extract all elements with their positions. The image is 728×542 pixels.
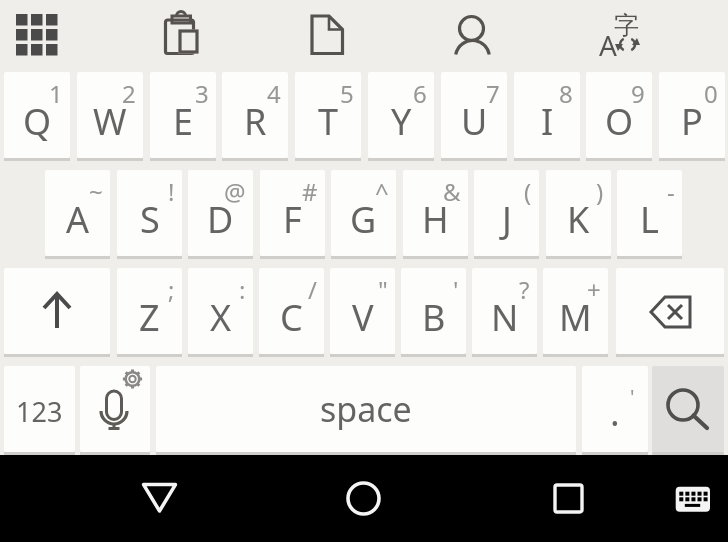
button[interactable] <box>652 366 724 455</box>
button[interactable] <box>4 268 110 357</box>
staticText: 5 <box>340 77 354 110</box>
staticText: 8 <box>559 77 573 110</box>
button[interactable]: S <box>117 170 182 259</box>
button[interactable]: O <box>586 72 652 161</box>
button[interactable]: V <box>330 268 395 357</box>
staticText: : <box>239 273 246 306</box>
staticText: 3 <box>195 77 209 110</box>
button[interactable] <box>152 4 212 64</box>
staticText: G <box>350 195 377 244</box>
staticText: A <box>599 26 617 64</box>
staticText: ! <box>168 175 175 208</box>
staticText: X <box>210 293 232 342</box>
staticText: O <box>605 97 634 146</box>
staticText: ~ <box>89 175 103 208</box>
staticText: ( <box>524 175 532 208</box>
staticText: 123 <box>16 393 63 430</box>
staticText: C <box>280 293 303 342</box>
button[interactable] <box>666 473 716 523</box>
button[interactable]: K <box>546 170 611 259</box>
staticText: ^ <box>375 175 389 208</box>
staticText: ) <box>596 175 604 208</box>
button[interactable]: F <box>260 170 325 259</box>
staticText: 2 <box>122 77 136 110</box>
staticText: / <box>308 273 317 306</box>
button[interactable]: R <box>222 72 288 161</box>
button[interactable]: C <box>259 268 324 357</box>
staticText: + <box>587 273 601 306</box>
button[interactable]: Z <box>117 268 182 357</box>
staticText: 字 <box>614 10 639 41</box>
staticText: P <box>681 97 703 146</box>
button[interactable] <box>616 268 724 357</box>
button[interactable]: W <box>77 72 143 161</box>
button[interactable] <box>135 473 185 523</box>
staticText: @ <box>224 175 246 208</box>
staticText: ? <box>519 273 530 306</box>
staticText: S <box>140 195 160 244</box>
staticText: D <box>207 195 234 244</box>
button[interactable]: E <box>150 72 216 161</box>
button[interactable]: A <box>45 170 110 259</box>
button[interactable]: X <box>188 268 253 357</box>
staticText: 7 <box>486 77 500 110</box>
staticText: Q <box>23 97 52 146</box>
staticText: 9 <box>631 77 645 110</box>
staticText: N <box>491 293 519 342</box>
button[interactable] <box>6 4 66 64</box>
staticText: K <box>567 195 590 244</box>
staticText: ' <box>453 273 459 306</box>
button[interactable]: J <box>474 170 539 259</box>
button[interactable] <box>544 473 594 523</box>
button[interactable]: P <box>659 72 725 161</box>
button[interactable]: L <box>617 170 682 259</box>
button[interactable] <box>80 366 150 455</box>
button[interactable]: Q <box>4 72 70 161</box>
button[interactable]: I <box>514 72 580 161</box>
button[interactable]: space <box>156 366 576 455</box>
button[interactable]: U <box>441 72 507 161</box>
staticText: Y <box>391 97 412 146</box>
button[interactable]: H <box>403 170 468 259</box>
staticText: V <box>352 293 374 342</box>
staticText: # <box>302 175 318 208</box>
button[interactable] <box>443 4 503 64</box>
button[interactable]: N <box>472 268 537 357</box>
staticText: " <box>378 273 388 306</box>
staticText: L <box>640 195 659 244</box>
staticText: 0 <box>704 77 718 110</box>
staticText: 6 <box>413 77 427 110</box>
staticText: . <box>610 388 620 437</box>
staticText: J <box>502 195 512 244</box>
button[interactable]: B <box>401 268 466 357</box>
staticText: - <box>667 175 675 208</box>
staticText: 1 <box>49 77 63 110</box>
staticText: A <box>66 195 90 244</box>
staticText: Z <box>139 293 160 342</box>
staticText: H <box>422 195 449 244</box>
button[interactable]: G <box>331 170 396 259</box>
staticText: F <box>283 195 302 244</box>
staticText: R <box>244 97 267 146</box>
staticText: W <box>93 97 127 146</box>
staticText: 4 <box>267 77 281 110</box>
staticText: ; <box>168 273 175 306</box>
staticText: T <box>318 97 339 146</box>
button[interactable]: . <box>582 366 648 455</box>
button[interactable]: Y <box>368 72 434 161</box>
staticText: ' <box>630 383 635 410</box>
staticText: U <box>461 97 488 146</box>
button[interactable] <box>339 473 389 523</box>
staticText: & <box>443 175 461 208</box>
staticText: space <box>320 386 412 432</box>
button[interactable]: M <box>543 268 608 357</box>
staticText: I <box>541 97 554 146</box>
button[interactable]: T <box>295 72 361 161</box>
button[interactable] <box>589 4 649 64</box>
staticText: M <box>559 293 592 342</box>
staticText: E <box>173 97 194 146</box>
button[interactable] <box>298 4 358 64</box>
button[interactable]: 123 <box>4 366 75 455</box>
staticText: B <box>422 293 446 342</box>
button[interactable]: D <box>188 170 253 259</box>
